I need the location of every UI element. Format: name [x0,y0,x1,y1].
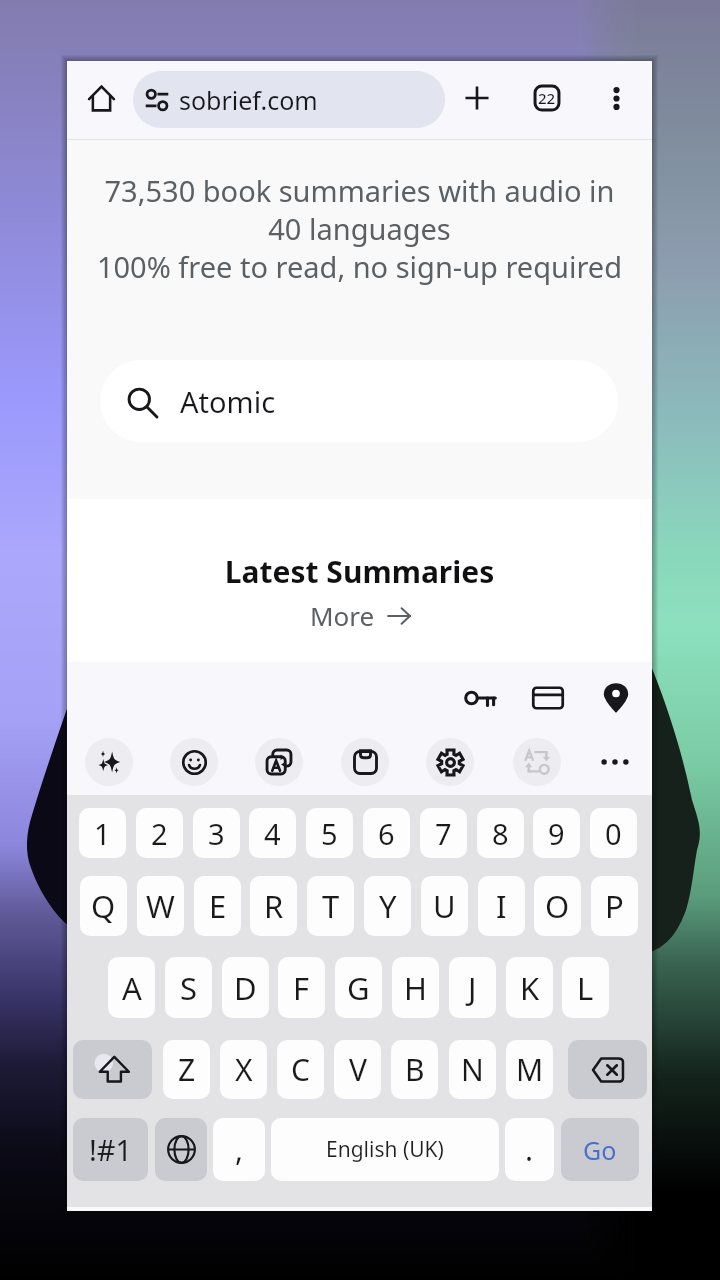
button[interactable]: Tabs, 22 open [521,72,573,124]
button[interactable]: B [391,1040,438,1099]
staticText: 9 [548,814,565,853]
button[interactable]: Home [75,72,127,124]
button[interactable]: New tab [451,72,503,124]
staticText: 8 [492,814,509,853]
button[interactable]: P [591,876,638,936]
button[interactable]: C [277,1040,324,1099]
staticText: sobrief.com [179,83,318,117]
button[interactable]: Backspace [568,1040,647,1099]
staticText: E [209,885,227,927]
button[interactable]: 0 [590,808,637,858]
staticText: D [234,967,257,1009]
button[interactable]: 2 [136,808,183,858]
staticText: N [461,1049,484,1090]
staticText: . [525,1129,534,1170]
staticText: 3 [208,814,225,853]
staticText: P [605,885,624,927]
staticText: , [235,1129,244,1170]
button[interactable]: Z [163,1040,210,1099]
button[interactable]: Addresses [590,672,642,724]
staticText: X [235,1049,253,1090]
button[interactable]: Settings [426,738,474,786]
staticText: L [577,967,594,1009]
button[interactable]: Emoji [170,738,218,786]
button[interactable]: I [478,876,525,936]
button[interactable]: English (UK) [271,1118,499,1181]
button[interactable]: V [334,1040,381,1099]
staticText: Latest Summaries [67,551,652,592]
staticText: 4 [264,814,281,853]
button[interactable]: F [278,957,325,1018]
button[interactable]: More keyboard options [589,736,641,788]
button[interactable]: E [194,876,241,936]
button[interactable]: O [534,876,581,936]
staticText: 1 [94,814,111,853]
button[interactable]: J [449,957,496,1018]
button[interactable]: . [505,1118,554,1181]
button[interactable]: X [220,1040,267,1099]
staticText: Y [379,885,397,927]
staticText: T [322,885,340,927]
staticText: 73,530 book summaries with audio in 40 l… [67,171,652,287]
staticText: 22 [538,88,556,108]
button[interactable]: 3 [193,808,240,858]
button[interactable]: Passwords [454,672,506,724]
staticText: 6 [378,814,395,853]
button[interactable]: sobrief.com [133,71,445,128]
button[interactable]: Smart compose [85,738,133,786]
staticText: !#1 [89,1130,133,1169]
button[interactable]: A [108,957,155,1018]
staticText: 7 [435,814,452,853]
button[interactable]: Symbols [73,1118,148,1181]
staticText: Z [178,1049,196,1090]
staticText: Q [91,885,116,927]
staticText: I [496,885,507,927]
button[interactable]: Change keyboard language [155,1118,207,1181]
button[interactable]: 9 [533,808,580,858]
staticText: G [347,967,370,1009]
button[interactable]: Q [80,876,127,936]
staticText: K [520,967,540,1009]
button[interactable]: 5 [306,808,353,858]
button[interactable]: Go [561,1118,639,1181]
button[interactable]: T [307,876,354,936]
button[interactable]: G [335,957,382,1018]
staticText: U [433,885,456,927]
staticText: Atomic [180,382,276,421]
button[interactable]: Y [364,876,411,936]
button[interactable]: More [310,598,412,633]
button[interactable]: W [137,876,184,936]
staticText: R [264,885,284,927]
button[interactable]: M [506,1040,553,1099]
staticText: English (UK) [326,1135,444,1164]
button[interactable]: 6 [363,808,410,858]
button[interactable]: S [165,957,212,1018]
button[interactable]: N [449,1040,496,1099]
staticText: S [180,967,198,1009]
button[interactable]: U [421,876,468,936]
staticText: O [545,885,570,927]
button[interactable]: , [213,1118,265,1181]
button[interactable]: More options [590,72,642,124]
button[interactable]: Shift [73,1040,152,1099]
staticText: J [468,967,477,1009]
button[interactable]: Clipboard [341,738,389,786]
button[interactable]: H [392,957,439,1018]
button[interactable]: Payments [522,672,574,724]
button[interactable]: K [506,957,553,1018]
button[interactable]: D [222,957,269,1018]
staticText: 0 [605,814,622,853]
button[interactable]: Translate [255,738,303,786]
button[interactable]: 1 [79,808,126,858]
button[interactable]: R [250,876,297,936]
staticText: H [404,967,427,1009]
button[interactable]: 4 [249,808,296,858]
button[interactable]: L [562,957,609,1018]
staticText: A [122,967,142,1009]
staticText: 5 [321,814,338,853]
button[interactable]: Text editing [513,738,561,786]
button[interactable]: Atomic [100,360,618,442]
button[interactable]: 8 [477,808,524,858]
staticText: More [310,598,375,633]
button[interactable]: 7 [420,808,467,858]
